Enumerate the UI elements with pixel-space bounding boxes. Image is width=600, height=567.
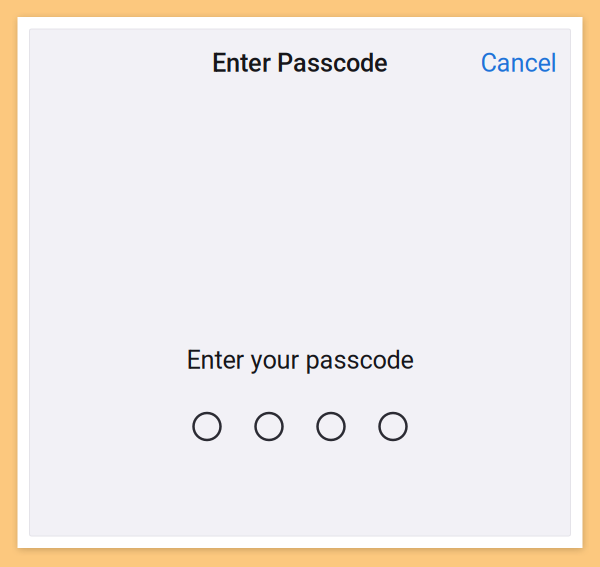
staticText: Cancel xyxy=(480,48,556,78)
staticText: Enter your passcode xyxy=(186,345,413,375)
button[interactable]: Cancel xyxy=(466,38,570,88)
staticText: Enter Passcode xyxy=(212,48,388,78)
